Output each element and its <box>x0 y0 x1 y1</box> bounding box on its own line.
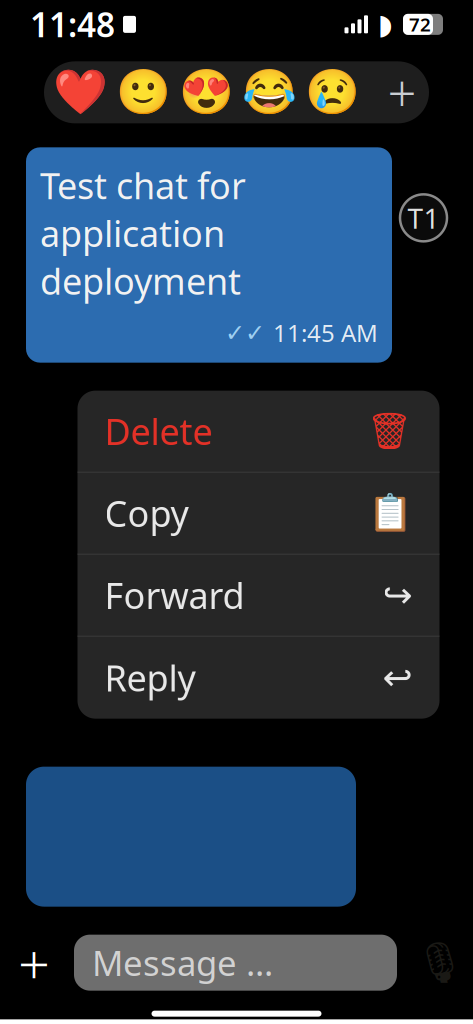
staticText: ◗ <box>378 8 393 40</box>
staticText: 📋 <box>367 493 412 534</box>
button[interactable]: Add attachment <box>8 937 60 989</box>
staticText: + <box>18 925 50 1000</box>
staticText: + <box>387 59 416 126</box>
button[interactable]: Delete <box>77 391 439 473</box>
staticText: Reply <box>104 654 195 701</box>
staticText: Forward <box>104 571 244 619</box>
staticText: 😂 <box>242 67 297 117</box>
staticText: ❤️ <box>53 67 108 117</box>
staticText: 😍 <box>179 67 234 117</box>
staticText: 🗑 <box>366 411 412 452</box>
staticText: ↪ <box>382 575 412 616</box>
button[interactable]: Record voice message <box>415 937 465 989</box>
button[interactable]: Copy <box>77 473 439 555</box>
button[interactable]: More reactions <box>384 72 420 112</box>
staticText: Copy <box>104 489 188 537</box>
staticText: 🙂 <box>116 67 171 117</box>
staticText: 😢 <box>305 67 360 117</box>
staticText: Test chat for application deployment <box>40 161 246 305</box>
staticText: Message ... <box>92 940 273 986</box>
button[interactable]: Forward <box>77 555 439 637</box>
button[interactable]: Reply <box>77 637 439 719</box>
staticText: T1 <box>407 199 439 236</box>
staticText: 11:48 <box>30 2 115 46</box>
staticText: 🎙 <box>414 940 465 985</box>
staticText: 72 <box>409 12 431 37</box>
staticText: 11:45 AM <box>273 317 378 349</box>
staticText: Delete <box>104 407 212 455</box>
staticText: ✓✓ <box>225 319 265 346</box>
staticText: ↩ <box>382 657 412 698</box>
button[interactable]: Message ... <box>74 935 397 991</box>
